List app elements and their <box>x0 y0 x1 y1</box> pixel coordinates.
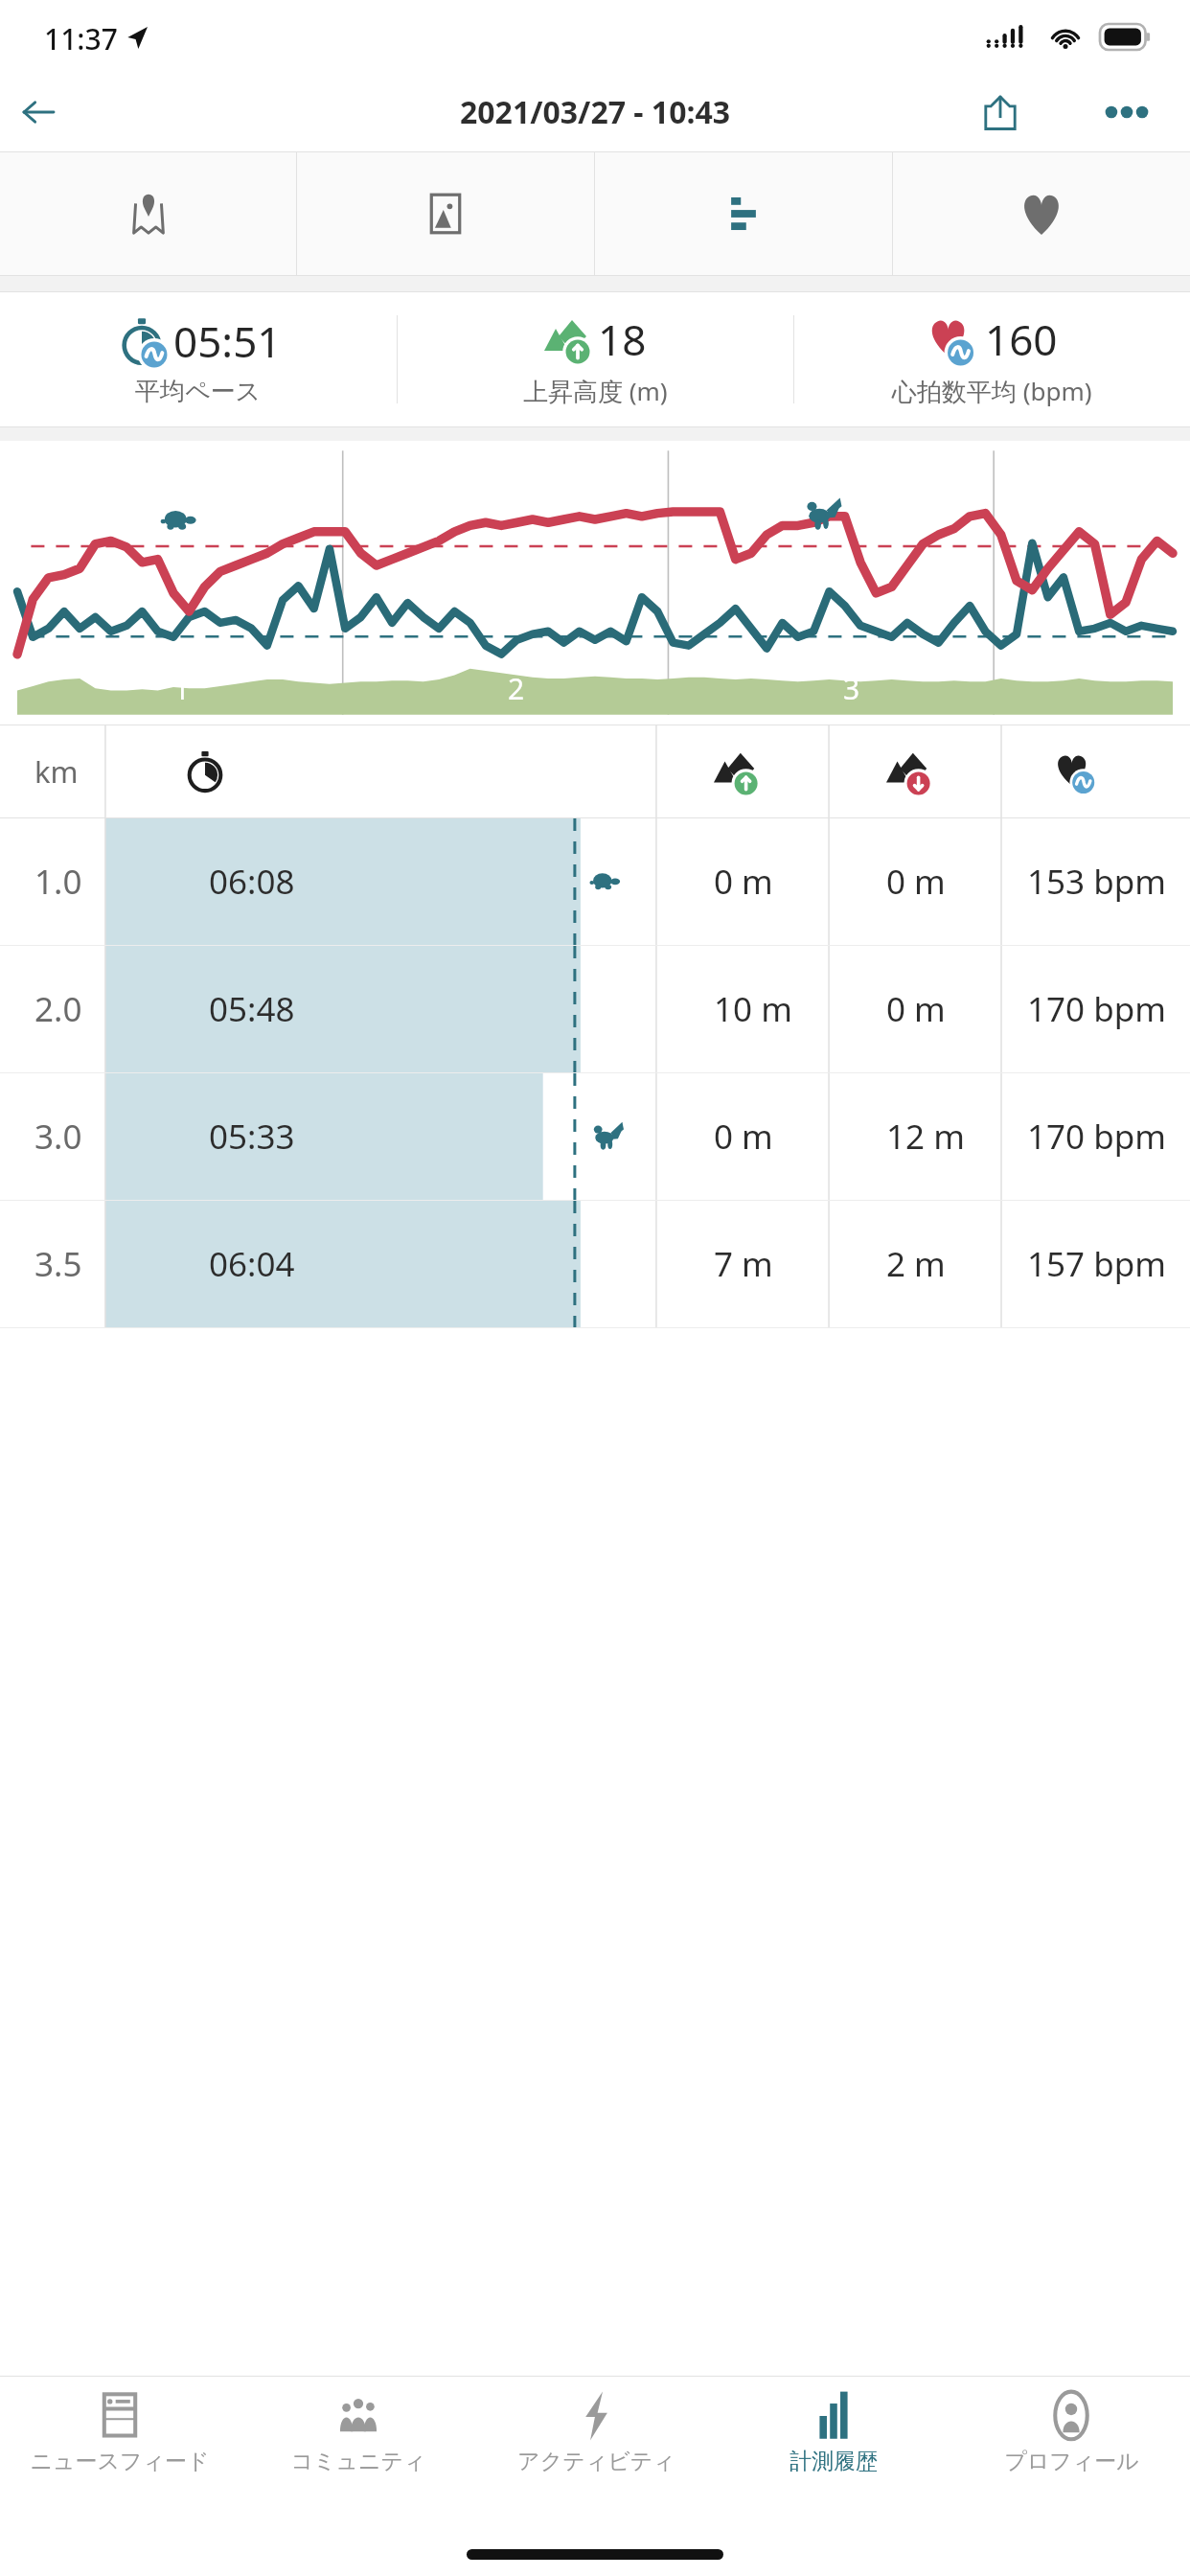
button[interactable]: Photos <box>297 152 594 275</box>
staticText: 2021/03/27 - 10:43 <box>460 91 731 133</box>
button[interactable]: プロフィール <box>952 2377 1190 2520</box>
staticText: 7 m <box>714 1241 773 1287</box>
button[interactable]: 計測履歴 <box>715 2377 952 2520</box>
button[interactable]: Map <box>0 152 296 275</box>
button[interactable]: 160 <box>794 292 1190 426</box>
button[interactable]: 1.0 <box>0 818 1190 945</box>
staticText: 3.0 <box>34 1114 82 1160</box>
staticText: 0 m <box>714 859 773 905</box>
staticText: 0 m <box>714 1114 773 1160</box>
button[interactable]: 18 <box>398 292 793 426</box>
staticText: 2 <box>508 669 525 708</box>
staticText: 計測履歴 <box>790 2448 878 2475</box>
staticText: 18 <box>598 310 647 368</box>
button[interactable]: 3.5 <box>0 1201 1190 1327</box>
staticText: 170 bpm <box>1027 1114 1166 1160</box>
staticText: 153 bpm <box>1027 859 1166 905</box>
button[interactable]: アクティビティ <box>477 2377 715 2520</box>
staticText: 0 m <box>886 986 946 1032</box>
staticText: 06:04 <box>209 1241 295 1287</box>
button[interactable]: ニュースフィード <box>0 2377 239 2520</box>
staticText: 心拍数平均 (bpm) <box>892 374 1092 408</box>
button[interactable]: 2.0 <box>0 946 1190 1072</box>
staticText: ニュースフィード <box>30 2448 210 2475</box>
staticText: 11:37 <box>44 19 118 58</box>
button[interactable]: Back <box>0 74 77 150</box>
staticText: アクティビティ <box>517 2448 675 2475</box>
staticText: 1 <box>173 669 191 708</box>
staticText: 05:51 <box>173 312 282 370</box>
button[interactable]: コミュニティ <box>239 2377 477 2520</box>
staticText: km <box>34 751 79 792</box>
staticText: 05:48 <box>209 986 295 1032</box>
button[interactable]: More options <box>1088 74 1165 150</box>
staticText: プロフィール <box>1004 2448 1139 2475</box>
staticText: 2 m <box>886 1241 946 1287</box>
staticText: 06:08 <box>209 859 295 905</box>
button[interactable]: 3.0 <box>0 1073 1190 1200</box>
staticText: 2.0 <box>34 986 82 1032</box>
staticText: 12 m <box>886 1114 965 1160</box>
staticText: 1.0 <box>34 859 82 905</box>
staticText: 05:33 <box>209 1114 295 1160</box>
staticText: 平均ペース <box>135 376 262 407</box>
button[interactable]: Charts <box>595 152 892 275</box>
staticText: 10 m <box>714 986 792 1032</box>
staticText: 0 m <box>886 859 946 905</box>
button[interactable]: 05:51 <box>0 292 397 426</box>
button[interactable]: Share <box>962 74 1039 150</box>
staticText: コミュニティ <box>290 2448 426 2475</box>
staticText: 157 bpm <box>1027 1241 1166 1287</box>
staticText: 3.5 <box>34 1241 82 1287</box>
staticText: 170 bpm <box>1027 986 1166 1032</box>
button[interactable]: Heart rate <box>893 152 1190 275</box>
staticText: 3 <box>843 669 860 708</box>
staticText: 160 <box>985 310 1058 368</box>
staticText: 上昇高度 (m) <box>523 374 668 408</box>
